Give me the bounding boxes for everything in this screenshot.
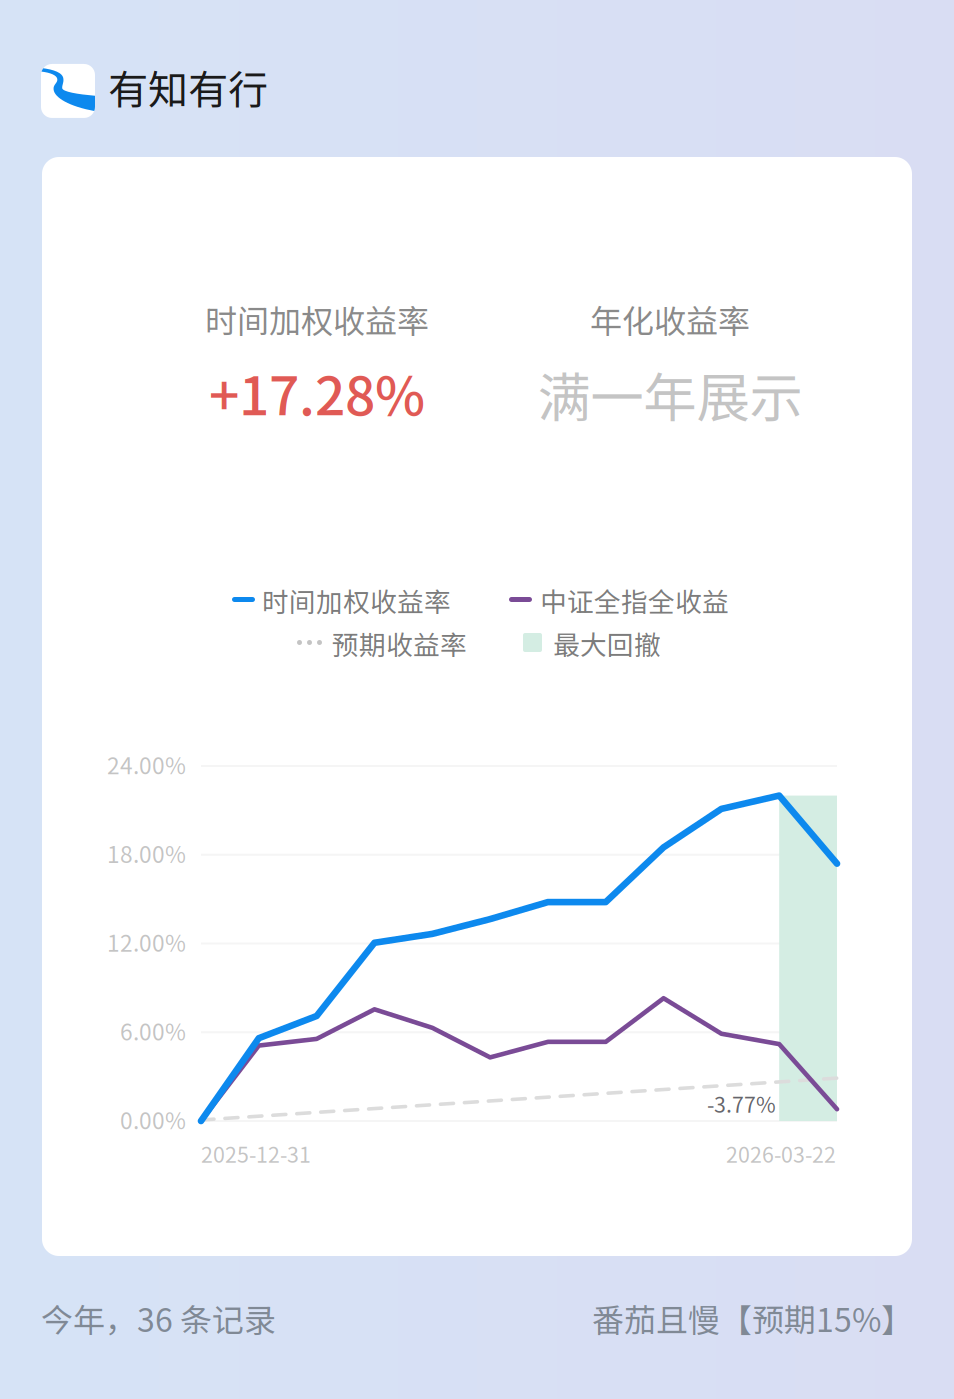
- button[interactable]: 预期收益率: [297, 624, 461, 656]
- staticText: 番茄且慢【预期15%】: [592, 1295, 913, 1341]
- button[interactable]: 今年，36 条记录: [41, 1295, 276, 1341]
- staticText: -3.77%: [707, 1088, 776, 1119]
- staticText: 12.00%: [107, 925, 186, 958]
- staticText: 有知有行: [108, 58, 268, 116]
- staticText: 时间加权收益率: [205, 296, 429, 342]
- staticText: 今年，36 条记录: [41, 1295, 276, 1341]
- staticText: 年化收益率: [590, 296, 750, 342]
- staticText: 2025-12-31: [201, 1138, 311, 1169]
- staticText: 6.00%: [120, 1014, 186, 1047]
- button[interactable]: 最大回撤: [523, 624, 657, 656]
- staticText: 中证全指全收益: [540, 581, 729, 620]
- button[interactable]: 中证全指全收益: [509, 581, 726, 613]
- staticText: 24.00%: [107, 748, 186, 781]
- staticText: +17.28%: [209, 353, 425, 430]
- staticText: 最大回撤: [553, 624, 661, 663]
- staticText: 2026-03-22: [726, 1138, 836, 1169]
- staticText: 满一年展示: [537, 355, 802, 432]
- staticText: 18.00%: [107, 837, 186, 870]
- staticText: 预期收益率: [332, 624, 467, 663]
- staticText: 0.00%: [120, 1103, 186, 1136]
- staticText: 时间加权收益率: [262, 581, 451, 620]
- button[interactable]: 番茄且慢【预期15%】: [513, 1295, 913, 1341]
- button[interactable]: 有知有行: [41, 62, 268, 120]
- button[interactable]: 时间加权收益率: [232, 581, 448, 613]
